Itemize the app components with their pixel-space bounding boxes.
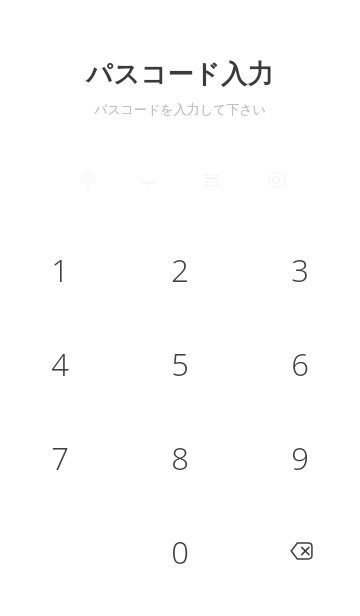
button[interactable]: 6 (240, 343, 360, 383)
staticText: 0 (171, 531, 189, 571)
staticText: 5 (171, 343, 189, 383)
button[interactable]: 0 (120, 531, 240, 571)
staticText: 9 (291, 437, 309, 477)
button[interactable]: 1 (0, 249, 120, 289)
staticText: 2 (171, 249, 189, 289)
staticText: 6 (291, 343, 309, 383)
staticText: 7 (51, 437, 69, 477)
staticText: 4 (51, 343, 69, 383)
staticText: 3 (291, 249, 309, 289)
staticText: 8 (171, 437, 189, 477)
button[interactable]: 7 (0, 437, 120, 477)
staticText: 1 (51, 249, 69, 289)
button[interactable]: 8 (120, 437, 240, 477)
button[interactable]: 5 (120, 343, 240, 383)
staticText: パスコード入力 (0, 58, 360, 91)
button[interactable]: 4 (0, 343, 120, 383)
button[interactable]: 2 (120, 249, 240, 289)
button[interactable]: Backspace (240, 531, 360, 571)
staticText: パスコードを入力して下さい (0, 101, 360, 117)
button[interactable]: 3 (240, 249, 360, 289)
button[interactable]: 9 (240, 437, 360, 477)
